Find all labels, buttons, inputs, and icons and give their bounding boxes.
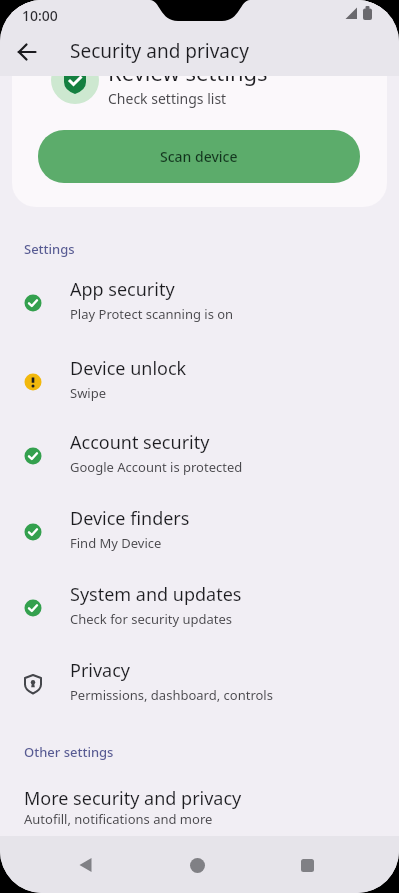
staticText: App security — [70, 277, 175, 302]
button[interactable]: System and updates — [0, 568, 399, 634]
staticText: More security and privacy — [24, 786, 242, 811]
staticText: Privacy — [70, 658, 131, 683]
staticText: Device unlock — [70, 356, 187, 381]
staticText: Check for security updates — [70, 610, 233, 628]
staticText: Autofill, notifications and more — [24, 810, 213, 828]
staticText: 10:00 — [22, 6, 58, 25]
button[interactable]: App security — [0, 263, 399, 329]
staticText: Play Protect scanning is on — [70, 305, 234, 323]
staticText: System and updates — [70, 582, 242, 607]
button[interactable] — [66, 845, 106, 885]
staticText: Review settings — [108, 57, 268, 87]
button[interactable]: Device unlock — [0, 342, 399, 408]
staticText: Other settings — [24, 743, 114, 761]
button[interactable]: Privacy — [0, 644, 399, 710]
button[interactable]: Scan device — [38, 130, 360, 183]
staticText: Security and privacy — [70, 38, 249, 64]
button[interactable]: Account security — [0, 416, 399, 482]
staticText: Device finders — [70, 506, 190, 531]
staticText: Account security — [70, 430, 210, 455]
staticText: Scan device — [160, 147, 238, 166]
button[interactable] — [287, 845, 327, 885]
button[interactable]: More security and privacy — [0, 780, 399, 838]
staticText: Settings — [24, 240, 75, 258]
button[interactable] — [177, 845, 217, 885]
staticText: Google Account is protected — [70, 458, 243, 476]
staticText: Find My Device — [70, 534, 162, 552]
button[interactable] — [8, 33, 46, 71]
staticText: Permissions, dashboard, controls — [70, 686, 273, 704]
staticText: Check settings list — [108, 89, 227, 108]
button[interactable]: Device finders — [0, 492, 399, 558]
staticText: Swipe — [70, 384, 107, 402]
